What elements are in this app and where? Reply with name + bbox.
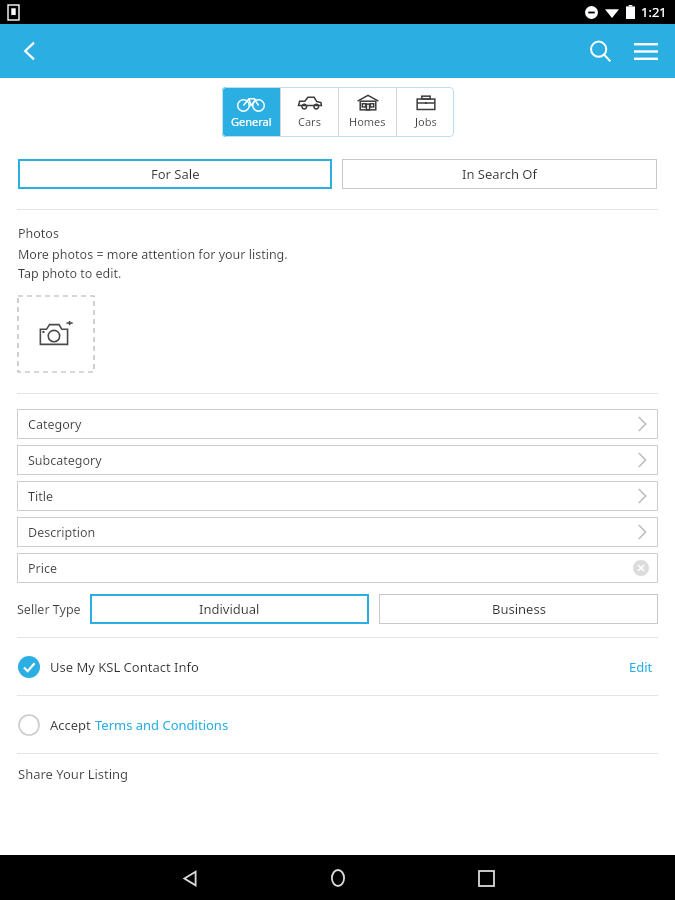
- button[interactable]: Search: [577, 28, 623, 74]
- button[interactable]: In Search Of: [342, 159, 657, 189]
- staticText: Title: [28, 488, 53, 505]
- button[interactable]: Back: [168, 856, 212, 900]
- button[interactable]: Business: [379, 594, 658, 624]
- button[interactable]: Accept: [18, 696, 657, 753]
- button[interactable]: Add photo: [18, 296, 94, 372]
- button[interactable]: Subcategory: [17, 445, 658, 475]
- button[interactable]: Price: [17, 553, 658, 583]
- button[interactable]: General: [222, 87, 280, 137]
- staticText: Homes: [349, 114, 386, 129]
- staticText: Individual: [199, 600, 260, 618]
- button[interactable]: Edit: [625, 652, 657, 682]
- staticText: Category: [28, 416, 82, 433]
- staticText: Subcategory: [28, 452, 102, 469]
- button[interactable]: Clear price: [633, 560, 649, 576]
- staticText: Seller Type: [17, 601, 81, 618]
- staticText: Photos: [18, 225, 59, 242]
- staticText: Terms and Conditions: [95, 716, 229, 734]
- staticText: General: [231, 114, 272, 129]
- button[interactable]: Individual: [90, 594, 369, 624]
- staticText: Edit: [629, 658, 653, 676]
- button[interactable]: Cars: [281, 87, 338, 137]
- staticText: Description: [28, 524, 96, 541]
- button[interactable]: For Sale: [18, 159, 332, 189]
- button[interactable]: Homes: [339, 87, 396, 137]
- button[interactable]: Back: [8, 29, 52, 73]
- staticText: Share Your Listing: [18, 765, 129, 783]
- button[interactable]: Use My KSL Contact Info: [18, 656, 625, 678]
- button[interactable]: Description: [17, 517, 658, 547]
- staticText: In Search Of: [462, 165, 537, 183]
- staticText: Price: [28, 560, 58, 577]
- staticText: Accept: [50, 716, 95, 734]
- staticText: More photos = more attention for your li…: [18, 246, 288, 263]
- staticText: 1:21: [641, 3, 667, 21]
- staticText: Tap photo to edit.: [18, 265, 122, 282]
- button[interactable]: Recent apps: [464, 856, 508, 900]
- staticText: Cars: [298, 114, 321, 129]
- staticText: For Sale: [151, 165, 200, 183]
- button[interactable]: Category: [17, 409, 658, 439]
- button[interactable]: Home: [316, 856, 360, 900]
- button[interactable]: Menu: [623, 28, 669, 74]
- staticText: Jobs: [415, 114, 437, 129]
- button[interactable]: Title: [17, 481, 658, 511]
- staticText: Business: [492, 600, 546, 618]
- button[interactable]: Jobs: [397, 87, 454, 137]
- staticText: Use My KSL Contact Info: [50, 658, 199, 676]
